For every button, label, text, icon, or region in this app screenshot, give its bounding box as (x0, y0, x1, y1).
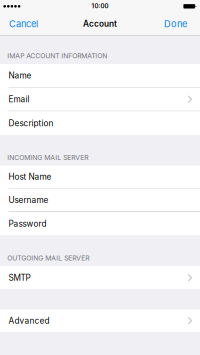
staticText: OUTGOING MAIL SERVER (7, 254, 89, 262)
button[interactable]: Host Name (0, 166, 200, 189)
staticText: Done (164, 18, 187, 29)
button[interactable]: Password (0, 212, 200, 235)
button[interactable]: Username (0, 189, 200, 212)
staticText: Host Name (9, 172, 52, 182)
staticText: Email (9, 94, 30, 104)
staticText: Password (9, 219, 47, 229)
staticText: INCOMING MAIL SERVER (7, 153, 88, 162)
staticText: Advanced (9, 316, 50, 326)
button[interactable]: SMTP (0, 266, 200, 289)
button[interactable]: Done (155, 12, 200, 35)
staticText: 10:00 (91, 2, 108, 10)
button[interactable]: Cancel (0, 12, 47, 35)
button[interactable]: Advanced (0, 309, 200, 332)
staticText: IMAP ACCOUNT INFORMATION (7, 52, 107, 60)
staticText: Cancel (9, 18, 38, 29)
staticText: Name (9, 70, 32, 80)
staticText: Account (83, 19, 117, 29)
staticText: Description (9, 118, 54, 128)
button[interactable]: Description (0, 111, 200, 135)
staticText: SMTP (9, 273, 31, 283)
button[interactable]: Name (0, 64, 200, 88)
staticText: Username (9, 195, 49, 205)
button[interactable]: Email (0, 88, 200, 111)
